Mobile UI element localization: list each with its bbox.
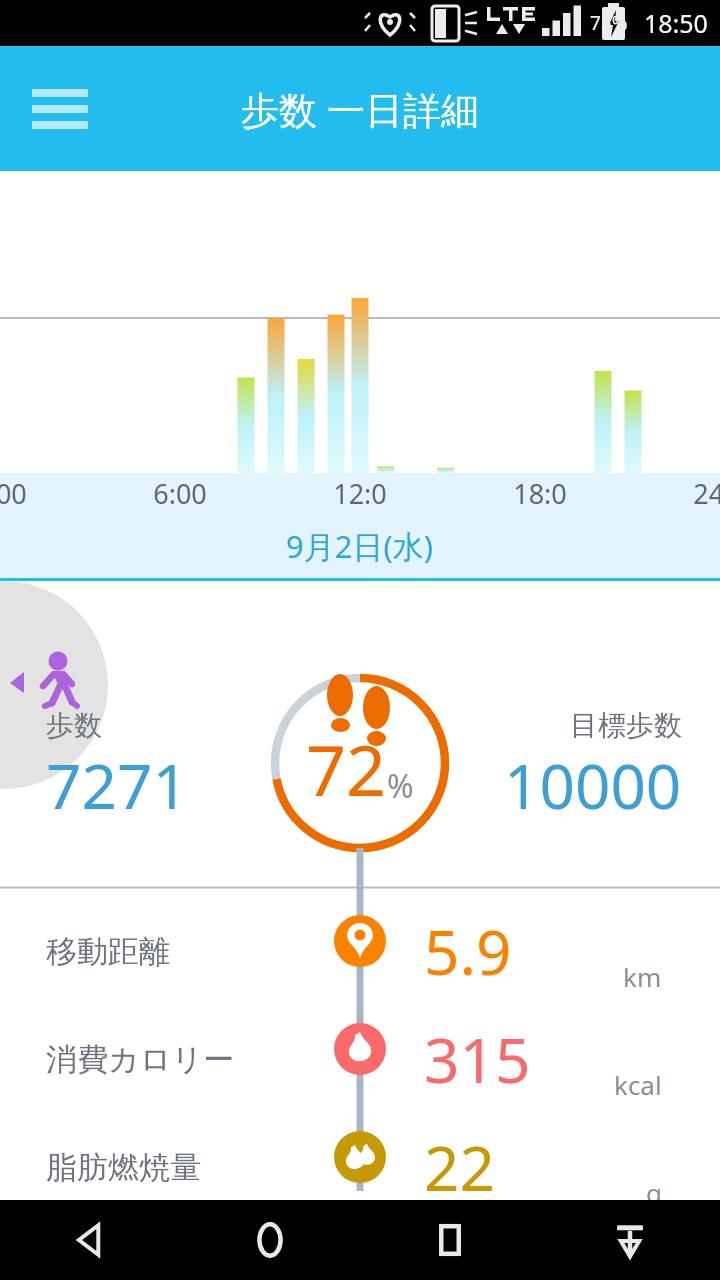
staticText: 移動距離 [46, 932, 170, 971]
staticText: 7271 [46, 743, 188, 827]
staticText: 脂肪燃焼量 [46, 1148, 201, 1187]
staticText: 歩数 [46, 708, 102, 743]
staticText: 目標歩数 [570, 708, 682, 743]
button[interactable]: 消費カロリー [0, 1016, 720, 1102]
button[interactable]: 脂肪燃焼量 [0, 1124, 720, 1210]
staticText: 5.9 [424, 909, 512, 993]
staticText: g [646, 1175, 662, 1210]
button[interactable]: Hide keyboard [540, 1200, 720, 1280]
button[interactable]: Home [180, 1200, 360, 1280]
button[interactable]: Back [0, 1200, 180, 1280]
staticText: 24:00 [690, 475, 720, 520]
staticText: 歩数 一日詳細 [241, 83, 479, 135]
staticText: 0:00 [0, 475, 30, 512]
staticText: 18:00 [510, 475, 570, 520]
button[interactable]: Recents [360, 1200, 540, 1280]
staticText: 10000 [504, 743, 682, 827]
staticText: 9月2日(水) [286, 525, 434, 567]
staticText: 72 [306, 721, 387, 816]
staticText: 消費カロリー [46, 1040, 235, 1079]
staticText: 75% [590, 10, 628, 36]
staticText: km [623, 959, 662, 994]
staticText: % [387, 764, 414, 808]
staticText: 22 [424, 1125, 495, 1209]
staticText: 315 [424, 1017, 531, 1101]
staticText: 18:50 [644, 6, 708, 40]
staticText: kcal [614, 1067, 662, 1102]
button[interactable]: 移動距離 [0, 908, 720, 994]
staticText: 12:00 [330, 475, 390, 520]
staticText: 6:00 [150, 475, 210, 512]
button[interactable]: Menu [28, 77, 92, 141]
